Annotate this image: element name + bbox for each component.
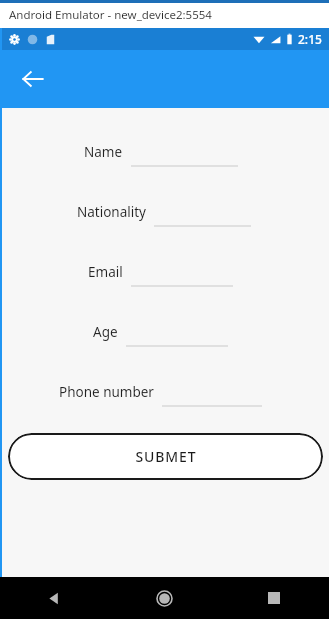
button[interactable] — [162, 377, 262, 407]
staticText: Email — [88, 263, 123, 281]
button[interactable] — [126, 317, 228, 347]
staticText: Phone number — [59, 383, 154, 401]
button[interactable] — [131, 137, 238, 167]
staticText: 2:15 — [298, 31, 322, 47]
staticText: Name — [84, 143, 123, 161]
button[interactable]: Recent apps — [219, 577, 329, 619]
staticText: Nationality — [77, 203, 146, 221]
button[interactable] — [154, 197, 251, 227]
button[interactable]: Back — [0, 577, 109, 619]
staticText: Android Emulator - new_device2:5554 — [9, 7, 212, 23]
button[interactable]: Back — [12, 58, 54, 100]
button[interactable]: SUBMET — [8, 433, 323, 480]
button[interactable] — [131, 257, 233, 287]
staticText: Age — [93, 323, 118, 341]
button[interactable]: Home — [109, 577, 219, 619]
staticText: SUBMET — [135, 447, 197, 466]
